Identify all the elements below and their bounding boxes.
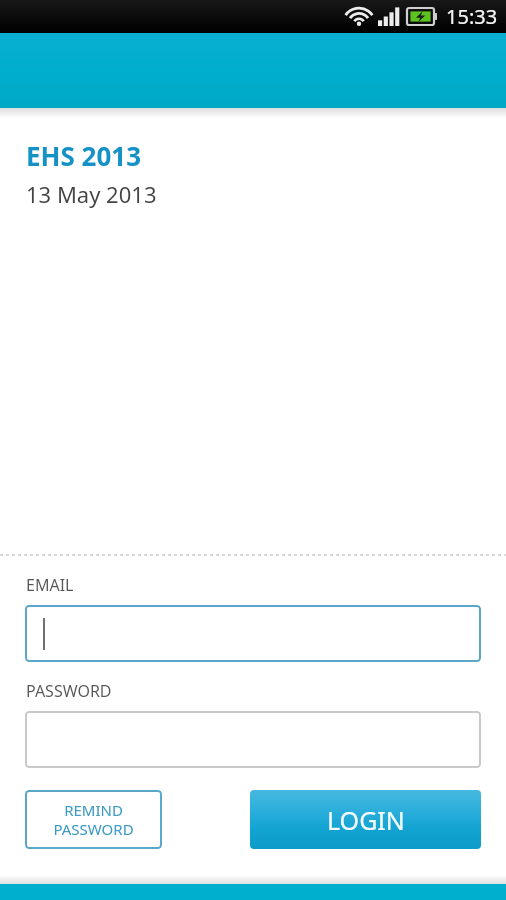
staticText: REMIND PASSWORD <box>53 800 134 839</box>
staticText: 13 May 2013 <box>26 179 157 209</box>
button[interactable] <box>25 605 481 662</box>
staticText: LOGIN <box>327 803 405 837</box>
staticText: 15:33 <box>446 3 498 30</box>
staticText: EHS 2013 <box>26 138 142 173</box>
button[interactable]: LOGIN <box>250 790 481 849</box>
button[interactable]: REMIND PASSWORD <box>25 790 162 849</box>
button[interactable] <box>25 711 481 768</box>
staticText: EMAIL <box>26 574 74 596</box>
staticText: PASSWORD <box>26 680 112 702</box>
